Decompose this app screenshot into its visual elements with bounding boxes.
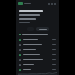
button[interactable]: [36, 27, 49, 31]
button[interactable]: [16, 47, 59, 52]
button[interactable]: App badge: [18, 2, 23, 5]
button[interactable]: [16, 67, 59, 72]
button[interactable]: [16, 42, 59, 47]
button[interactable]: [16, 37, 59, 42]
button[interactable]: [16, 52, 59, 57]
button[interactable]: [16, 62, 59, 67]
button[interactable]: [16, 57, 59, 62]
